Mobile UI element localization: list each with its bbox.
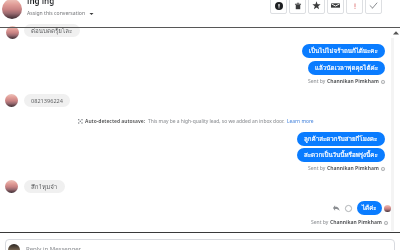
- staticText: สะดวกเป็นวันนี้หรือพรุ่งนี้คะ: [304, 150, 378, 160]
- button[interactable]: ลูกค้าสะดวกรับสายกี่โมงคะ: [297, 132, 385, 146]
- staticText: 0821396224: [31, 97, 63, 105]
- button[interactable]: Mark as unread: [327, 0, 344, 14]
- button[interactable]: สึก1หุมจ๋า: [24, 180, 65, 193]
- button[interactable]: Mark as spam: [270, 0, 287, 14]
- button[interactable]: Learn more: [287, 118, 314, 125]
- staticText: This may be a high-quality lead, so we a…: [148, 118, 285, 125]
- staticText: ing ing: [27, 0, 55, 6]
- staticText: Assign this conversation: [27, 10, 86, 17]
- button[interactable]: ได้ค่ะ: [357, 201, 382, 215]
- button[interactable]: Assign this conversation: [27, 10, 94, 17]
- button[interactable]: ต่อนบดดรุ้ยโละ: [24, 24, 80, 37]
- staticText: Reply in Messenger: [26, 245, 82, 250]
- button[interactable]: Mark as done: [365, 0, 382, 14]
- button[interactable]: Reply: [332, 204, 341, 213]
- button[interactable]: React: [344, 204, 353, 213]
- staticText: Sent by: [308, 78, 327, 85]
- button[interactable]: 0821396224: [24, 94, 70, 107]
- button[interactable]: Delete: [289, 0, 306, 14]
- staticText: Auto-detected autosave:: [85, 118, 146, 125]
- staticText: แล้วนัดเวลาพุดคุธไต้ค่ะ: [315, 63, 378, 73]
- staticText: เป็นไปไม่จร้าถนก้ไต้นะคะ: [309, 46, 378, 56]
- staticText: Channikan Pimkham: [330, 219, 382, 226]
- button[interactable]: เป็นไปไม่จร้าถนก้ไต้นะคะ: [302, 44, 385, 58]
- button[interactable]: Star: [308, 0, 325, 14]
- button[interactable]: แล้วนัดเวลาพุดคุธไต้ค่ะ: [308, 61, 385, 75]
- staticText: ต่อนบดดรุ้ยโละ: [31, 26, 73, 36]
- staticText: ได้ค่ะ: [362, 203, 377, 213]
- staticText: Sent by: [311, 219, 330, 226]
- staticText: Channikan Pimkham: [327, 165, 379, 172]
- staticText: ลูกค้าสะดวกรับสายกี่โมงคะ: [304, 134, 378, 144]
- button[interactable]: สะดวกเป็นวันนี้หรือพรุ่งนี้คะ: [297, 148, 385, 162]
- staticText: Sent by: [308, 165, 327, 172]
- staticText: สึก1หุมจ๋า: [31, 182, 58, 192]
- staticText: Channikan Pimkham: [327, 78, 379, 85]
- button[interactable]: [5, 239, 395, 250]
- button[interactable]: Flag: [346, 0, 363, 14]
